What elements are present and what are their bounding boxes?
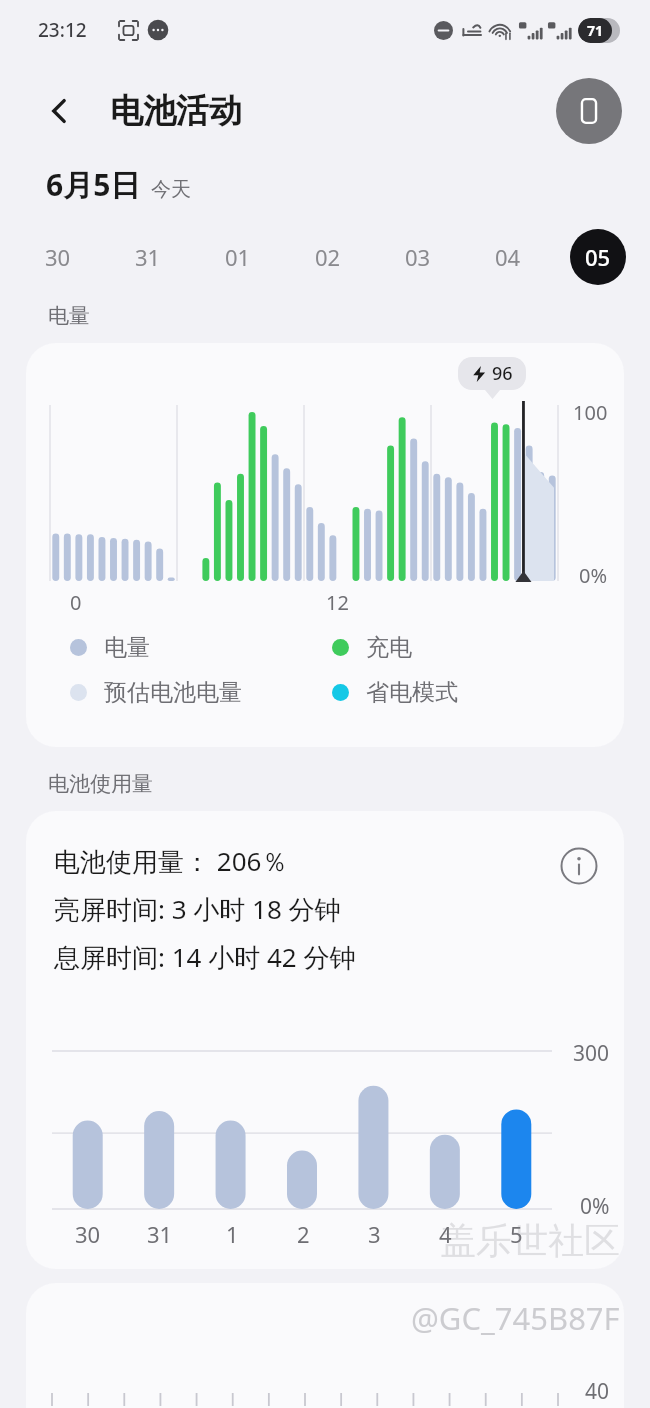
button[interactable]: 30 <box>30 229 86 285</box>
staticText: 96 <box>492 361 513 386</box>
button[interactable]: 05 <box>570 229 626 285</box>
staticText: 今天 <box>151 177 191 202</box>
staticText: 30 <box>75 1219 101 1249</box>
staticText: @GC_745B87F <box>411 1297 620 1339</box>
staticText: 12 <box>326 589 349 616</box>
staticText: 71 <box>587 21 604 40</box>
staticText: 息屏时间: 14 小时 42 分钟 <box>54 939 356 975</box>
button[interactable]: 31 <box>120 229 176 285</box>
staticText: 预估电池电量 <box>104 678 242 707</box>
button[interactable]: 04 <box>480 229 536 285</box>
button[interactable]: 返回 <box>36 87 84 135</box>
staticText: 6月5日 <box>46 164 141 205</box>
staticText: 0 <box>70 589 82 616</box>
staticText: 31 <box>147 1219 173 1249</box>
staticText: 电池活动 <box>110 90 242 132</box>
button[interactable]: 02 <box>300 229 356 285</box>
button[interactable]: @GC_745B87F <box>26 1283 624 1408</box>
staticText: 23:12 <box>38 17 87 43</box>
staticText: 04 <box>495 242 521 272</box>
staticText: 5 <box>510 1219 523 1249</box>
staticText: 40 <box>585 1377 610 1406</box>
staticText: 电量 <box>104 633 150 662</box>
staticText: 31 <box>135 242 161 272</box>
staticText: 01 <box>225 242 251 272</box>
staticText: 电量 <box>48 303 90 329</box>
staticText: 充电 <box>366 633 412 662</box>
staticText: 0% <box>579 562 608 589</box>
staticText: 0% <box>580 1192 610 1221</box>
staticText: 1 <box>226 1219 239 1249</box>
button[interactable]: 03 <box>390 229 446 285</box>
button[interactable]: 电池使用量： 206％ <box>26 811 624 1269</box>
staticText: 盖乐世社区 <box>440 1218 620 1263</box>
staticText: 300 <box>573 1039 610 1068</box>
button[interactable]: 01 <box>210 229 266 285</box>
staticText: 3 <box>368 1219 381 1249</box>
staticText: 100 <box>573 399 608 426</box>
staticText: 03 <box>405 242 431 272</box>
staticText: 05 <box>585 242 611 272</box>
button[interactable]: 信息 <box>556 843 602 889</box>
staticText: 4 <box>439 1219 452 1249</box>
button[interactable]: 96 <box>26 343 624 747</box>
staticText: 亮屏时间: 3 小时 18 分钟 <box>54 891 341 927</box>
staticText: 02 <box>315 242 341 272</box>
staticText: 省电模式 <box>366 678 458 707</box>
staticText: 电池使用量： 206％ <box>54 843 288 879</box>
staticText: 30 <box>45 242 71 272</box>
button[interactable]: 设备 <box>556 78 622 144</box>
staticText: 2 <box>297 1219 310 1249</box>
staticText: 电池使用量 <box>48 771 153 797</box>
